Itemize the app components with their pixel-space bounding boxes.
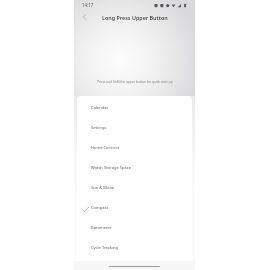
staticText: Long Press Upper Button (102, 14, 168, 21)
button[interactable]: Home Connect (77, 138, 192, 158)
staticText: Compass (91, 205, 109, 211)
staticText: 14:17 (82, 2, 94, 8)
button[interactable]: Sun & Moon (77, 178, 192, 198)
button[interactable]: Calendar (77, 98, 192, 118)
staticText: Watch Storage Space (91, 165, 131, 171)
staticText: Calendar (91, 105, 109, 111)
staticText: Barometer (91, 225, 112, 231)
button[interactable]: Cycle Tracking (77, 238, 192, 258)
button[interactable]: Back (78, 10, 92, 24)
button[interactable]: Barometer (77, 218, 192, 238)
staticText: Home Connect (91, 145, 120, 151)
staticText: Press and hold the upper button for quic… (97, 80, 173, 84)
staticText: Cycle Tracking (91, 245, 118, 251)
staticText: Sun & Moon (91, 185, 115, 191)
button[interactable]: Watch Storage Space (77, 158, 192, 178)
button[interactable]: Compass (77, 198, 192, 218)
button[interactable]: Settings (77, 118, 192, 138)
staticText: Settings (91, 125, 107, 131)
